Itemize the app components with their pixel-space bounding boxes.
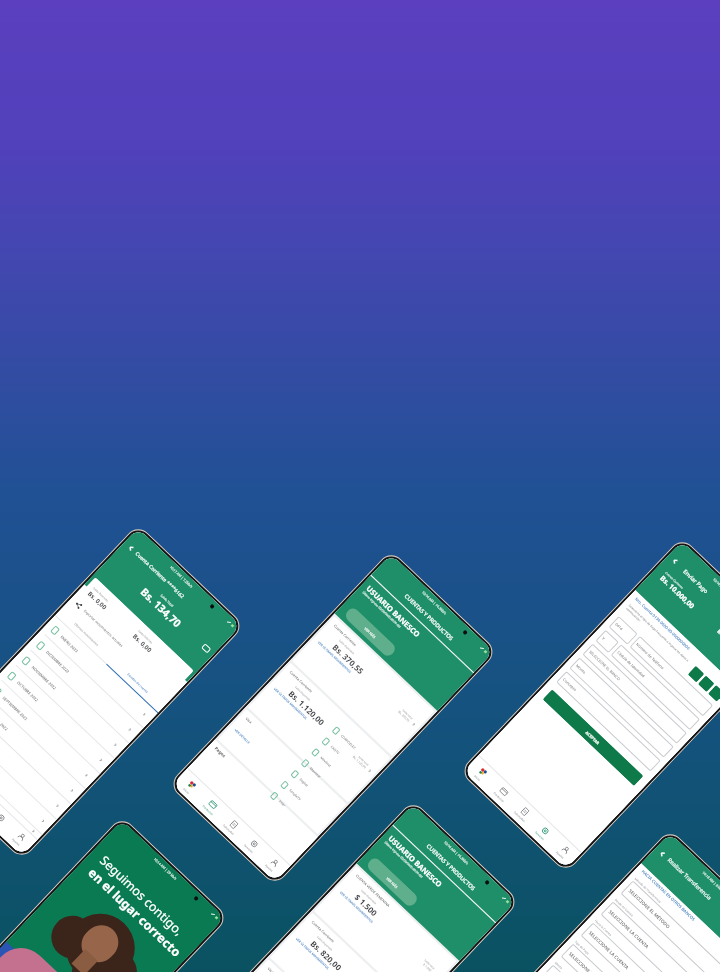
button[interactable]: Últimos movimientos: [55, 604, 117, 664]
button[interactable]: MAYO 2022: [0, 737, 42, 839]
button[interactable]: Ajustes: [2, 821, 37, 856]
staticText: OCTUBRE 2022: [16, 680, 39, 702]
button[interactable]: ENERO 2023: [41, 616, 158, 728]
staticText: Seguimos contigo,: [96, 852, 187, 939]
button[interactable]: SELECCIONE LA CUENTA: [581, 922, 687, 972]
staticText: Bs. 0,00: [132, 632, 154, 653]
button[interactable]: SEPTIEMBRE 2022: [0, 676, 100, 789]
button[interactable]: Monto: [569, 657, 674, 758]
button[interactable]: CORPOELEC: [328, 722, 381, 773]
staticText: Tipo de Pago: [574, 940, 590, 956]
button[interactable]: SELECCIONE EL TIPO: [561, 944, 667, 972]
staticText: ACEPTAR: [584, 730, 601, 746]
button[interactable]: Visa: [218, 709, 347, 834]
button[interactable]: SimpleTV: [277, 776, 329, 827]
button[interactable]: Digitel: [287, 766, 339, 816]
button[interactable]: Acción: [698, 675, 715, 692]
staticText: Bs. 820,00: [308, 938, 344, 972]
staticText: USUARIO BANESCO: [364, 583, 423, 639]
button[interactable]: Número de Teléfono: [630, 636, 713, 716]
button[interactable]: VER MÁS: [343, 606, 398, 658]
button[interactable]: Back: [667, 553, 682, 569]
button[interactable]: Movistar: [297, 755, 350, 805]
button[interactable]: CUENTA VERDE FEMENINA: [314, 866, 457, 972]
staticText: SimpleTV: [288, 788, 302, 802]
button[interactable]: Saldo Retenido: [77, 577, 194, 689]
staticText: Número de Teléfono: [635, 642, 665, 671]
button[interactable]: Inicio: [172, 768, 208, 804]
staticText: SELECCIONE EL TIPO: [568, 951, 605, 972]
staticText: Cuenta Corriente: [289, 670, 314, 694]
button[interactable]: Concepto: [556, 671, 661, 771]
button[interactable]: 0,00: [541, 965, 647, 972]
button[interactable]: Cuenta Corriente: [292, 616, 435, 756]
button[interactable]: Cuenta Corriente: [270, 912, 413, 972]
button[interactable]: Visa: [240, 959, 369, 972]
staticText: SEPTIEMBRE 2022: [2, 695, 29, 722]
button[interactable]: Acción: [708, 685, 720, 702]
staticText: Bs. 10.000,00: [657, 574, 696, 611]
button[interactable]: Back: [654, 846, 670, 861]
button[interactable]: OCTUBRE 2022: [0, 661, 114, 774]
button[interactable]: Inicio: [463, 755, 499, 791]
staticText: Ajustes: [264, 863, 274, 873]
staticText: SELECCIONE LA CUENTA: [608, 909, 650, 949]
button[interactable]: Servicios: [0, 802, 17, 837]
button[interactable]: Cuenta Corriente: [248, 662, 391, 802]
button[interactable]: SELECCIONE EL BANCO: [582, 644, 687, 744]
button[interactable]: AGOSTO 2022: [0, 692, 85, 804]
staticText: VER ÚLTIMOS MOVIMIENTOS: [295, 937, 330, 971]
staticText: Saldo disponible: [360, 889, 378, 906]
button[interactable]: VER MÁS: [365, 856, 420, 908]
staticText: Hacia la Cuenta: [594, 919, 612, 937]
staticText: Digitel: [299, 777, 310, 788]
staticText: SELECCIONE EL BANCO: [588, 649, 622, 682]
button[interactable]: Acción: [688, 666, 705, 683]
button[interactable]: Servicios: [525, 815, 561, 850]
button[interactable]: 0414: [608, 616, 638, 645]
staticText: VER MÁS: [385, 876, 399, 890]
button[interactable]: SELECCIONE LA CUENTA: [601, 901, 707, 972]
staticText: Nro. Cuenta 0134-0000-00-0000000000: [634, 596, 691, 651]
button[interactable]: NOVIEMBRE 2022: [12, 646, 129, 758]
staticText: VER DETALLE: [234, 728, 251, 745]
staticText: Cuenta Corriente: [664, 571, 685, 590]
button[interactable]: Productos: [193, 788, 229, 824]
button[interactable]: Productos: [484, 775, 520, 811]
staticText: Cuenta Corriente: [333, 623, 358, 647]
button[interactable]: DICIEMBRE 2022: [26, 631, 143, 743]
staticText: Ajustes: [11, 837, 21, 847]
staticText: Saldo disponible: [294, 685, 312, 702]
staticText: 10:14 AM | 29 kb/s: [153, 856, 178, 881]
staticText: Exportar movimientos actuales: [83, 608, 125, 648]
button[interactable]: CANTV: [318, 733, 370, 784]
staticText: VER ÚLTIMOS MOVIMIENTOS: [317, 640, 352, 674]
staticText: CANTV: [329, 744, 341, 755]
staticText: SELECCIONE EL MÉTODO: [628, 888, 672, 930]
button[interactable]: Solicitudes: [214, 808, 250, 844]
button[interactable]: ACEPTAR: [542, 689, 643, 786]
staticText: AGOSTO 2022: [0, 711, 9, 731]
button[interactable]: Inter: [266, 787, 319, 838]
staticText: Bs. 140: [716, 627, 720, 646]
button[interactable]: Solicitudes: [505, 795, 541, 831]
staticText: Saldo Total: [160, 594, 175, 608]
button[interactable]: JULIO 2022: [0, 707, 71, 819]
staticText: Monto: [554, 961, 564, 971]
button[interactable]: Estados de cuenta: [107, 653, 169, 713]
button[interactable]: Cédula de Identidad: [611, 644, 700, 730]
button[interactable]: Ajustes: [546, 834, 581, 869]
button[interactable]: Back: [123, 540, 138, 556]
button[interactable]: V: [595, 630, 619, 653]
staticText: Método de Transferencia: [634, 877, 663, 904]
staticText: Visa: [245, 716, 253, 724]
button[interactable]: Exportar movimientos actuales: [66, 592, 180, 702]
staticText: Servicios: [534, 830, 545, 842]
button[interactable]: Movilnet: [308, 744, 360, 795]
staticText: Saldo total: [423, 958, 436, 970]
button[interactable]: Ajustes: [255, 847, 290, 882]
staticText: Bs. 370,55: [397, 710, 411, 723]
button[interactable]: Servicios: [234, 828, 270, 863]
button[interactable]: SELECCIONE EL MÉTODO: [621, 880, 720, 972]
button[interactable]: JUNIO 2022: [0, 722, 56, 834]
